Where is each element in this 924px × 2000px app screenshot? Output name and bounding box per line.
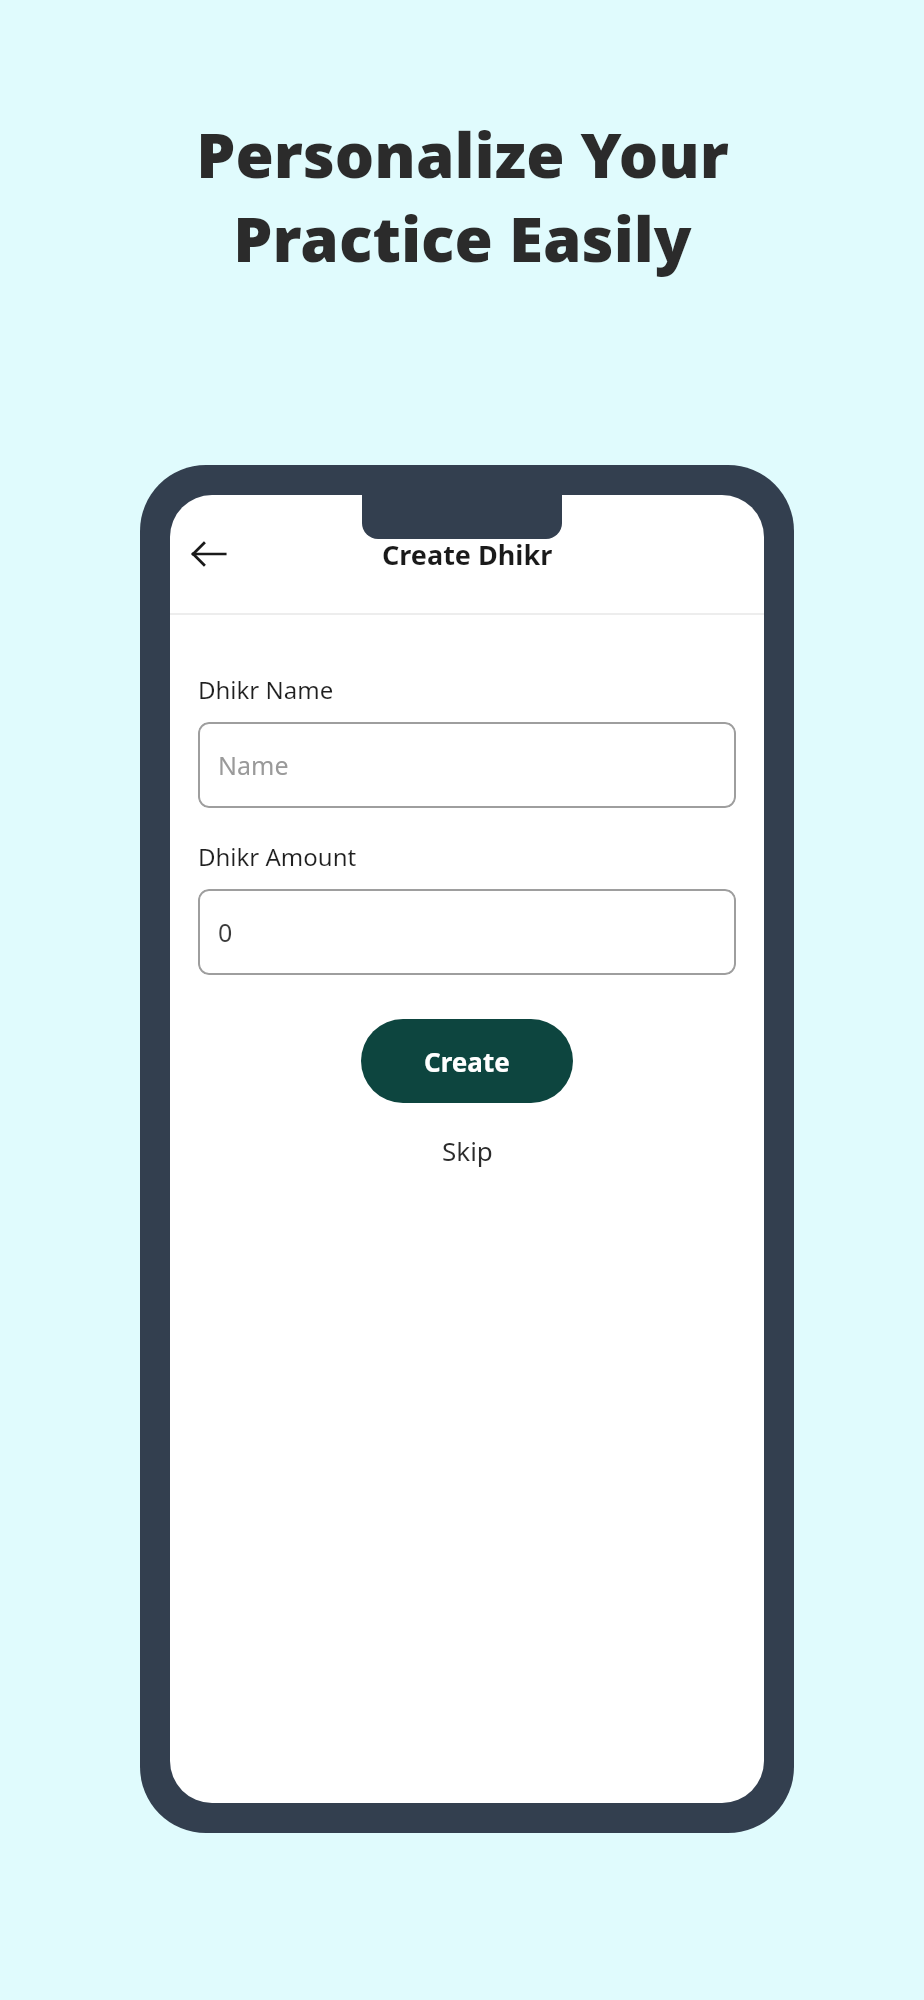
button[interactable]: Name [198, 722, 736, 808]
staticText: 0 [218, 915, 233, 949]
button[interactable]: Create [361, 1019, 573, 1103]
button[interactable]: Back [178, 523, 240, 585]
button[interactable]: 0 [198, 889, 736, 975]
button[interactable]: Skip [418, 1125, 517, 1176]
staticText: Practice Easily [233, 196, 692, 280]
staticText: Create [424, 1044, 510, 1079]
staticText: Personalize Your [196, 112, 729, 196]
staticText: Name [218, 748, 289, 782]
staticText: Create Dhikr [382, 536, 553, 573]
staticText: Skip [442, 1133, 493, 1168]
staticText: Dhikr Amount [198, 840, 357, 873]
staticText: Dhikr Name [198, 673, 334, 706]
